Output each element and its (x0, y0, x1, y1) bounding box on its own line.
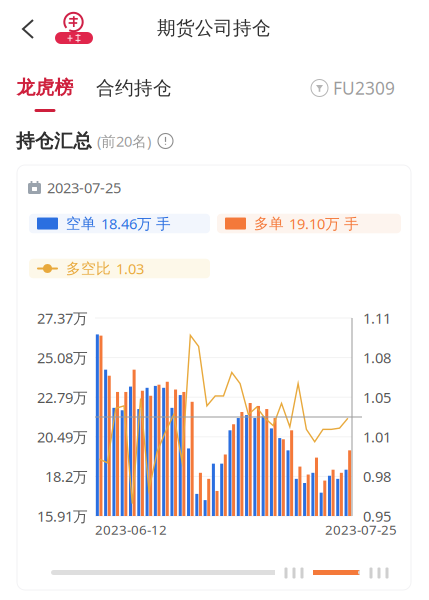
button[interactable]: Range end (360, 560, 398, 586)
button[interactable]: Range start (275, 560, 313, 586)
staticText: 期货公司持仓 (157, 16, 271, 39)
staticText: 0.98 (363, 467, 391, 486)
staticText: 19.10万 手 (289, 214, 359, 233)
staticText: 1.01 (363, 427, 391, 447)
staticText: 27.37万 (37, 308, 88, 328)
staticText: 1.11 (363, 308, 391, 328)
staticText: 15.91万 (37, 506, 88, 526)
staticText: (前20名) (97, 131, 151, 151)
button[interactable]: Info (151, 133, 173, 148)
staticText: 1.03 (116, 259, 144, 278)
staticText: 2023-07-25 (47, 178, 121, 197)
staticText: 25.08万 (37, 348, 88, 367)
staticText: 持仓汇总 (16, 129, 92, 152)
button[interactable]: FU2309 (311, 76, 411, 99)
button[interactable]: 龙虎榜 (16, 76, 74, 112)
staticText: 1.05 (363, 387, 391, 407)
staticText: 1.08 (363, 348, 391, 367)
staticText: 20.49万 (37, 427, 88, 447)
staticText: 空单 (66, 214, 96, 232)
button[interactable]: 合约持仓 (96, 76, 172, 100)
staticText: 2023-07-25 (325, 521, 397, 538)
button[interactable]: Back (16, 16, 42, 42)
staticText: 多空比 (66, 259, 111, 277)
staticText: 22.79万 (37, 387, 88, 407)
staticText: 18.2万 (45, 467, 88, 486)
staticText: FU2309 (333, 76, 395, 99)
staticText: 2023-06-12 (95, 521, 167, 538)
staticText: 合约持仓 (96, 76, 172, 99)
staticText: 18.46万 手 (101, 214, 171, 233)
staticText: 多单 (254, 214, 284, 232)
staticText: 0.95 (363, 506, 391, 526)
staticText: 龙虎榜 (16, 76, 73, 99)
